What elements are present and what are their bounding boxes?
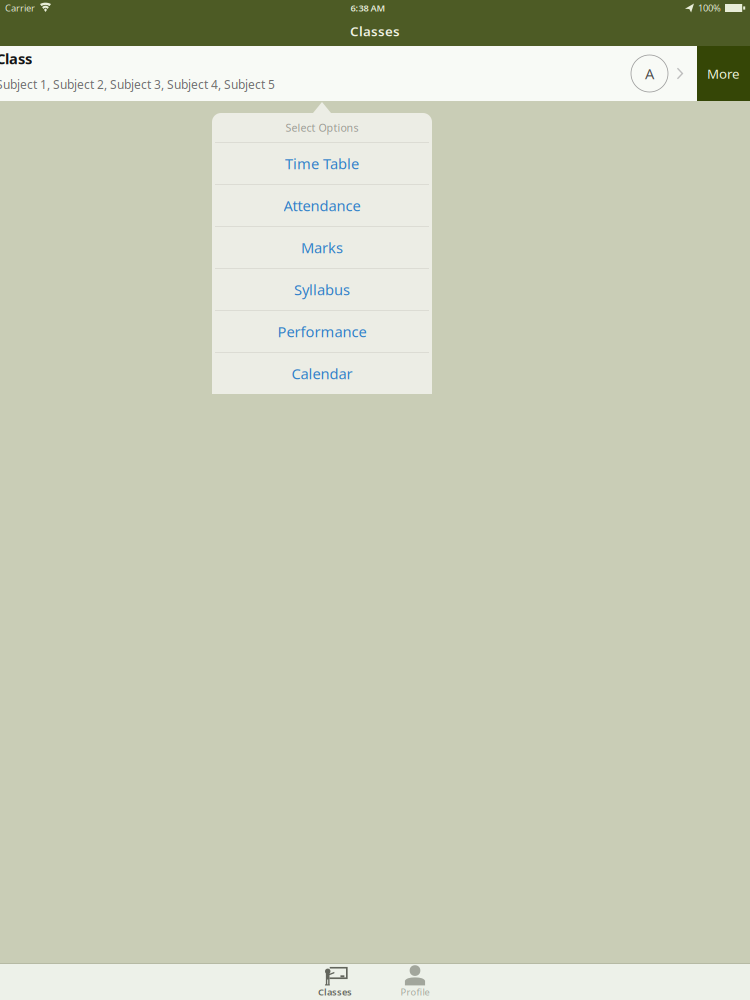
staticText: A [645,64,654,83]
button[interactable]: Attendance [212,185,432,226]
staticText: Time Table [285,154,359,173]
staticText: Marks [301,238,343,257]
staticText: Class [0,49,32,68]
staticText: Syllabus [294,280,350,299]
staticText: More [707,65,740,82]
button[interactable]: Performance [212,311,432,352]
button[interactable]: Profile [375,964,455,1000]
staticText: Classes [350,22,400,40]
button[interactable]: Syllabus [212,269,432,310]
staticText: Calendar [291,364,352,383]
button[interactable]: More [697,46,750,101]
staticText: Carrier [5,2,35,14]
staticText: 6:38 AM [350,2,385,14]
staticText: Select Options [285,120,358,135]
button[interactable]: Marks [212,227,432,268]
button[interactable]: Classes [295,964,375,1000]
staticText: Classes [318,986,352,998]
staticText: Profile [400,986,429,998]
button[interactable]: Time Table [212,143,432,184]
staticText: Attendance [283,196,360,215]
staticText: Performance [277,322,366,341]
staticText: Subject 1, Subject 2, Subject 3, Subject… [0,76,275,92]
button[interactable]: Class [0,46,697,101]
staticText: 100% [698,2,721,14]
button[interactable]: Calendar [212,353,432,394]
